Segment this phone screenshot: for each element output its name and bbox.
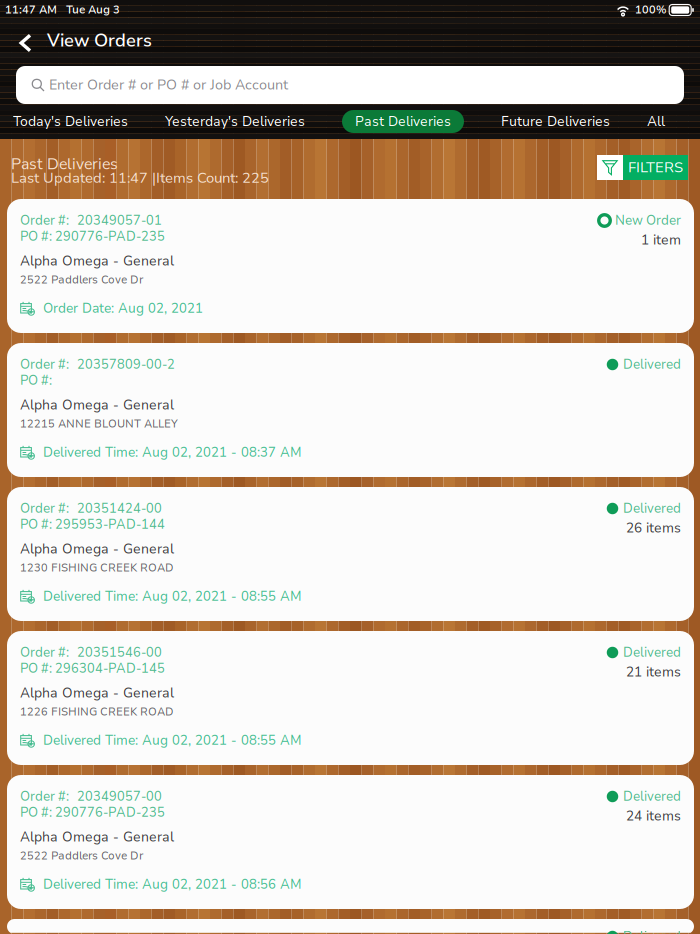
staticText: Past Deliveries: [355, 112, 451, 131]
staticText: Order #:: [20, 212, 69, 229]
staticText: View Orders: [47, 28, 152, 53]
button[interactable]: Order #:: [7, 631, 694, 765]
staticText: Yesterday's Deliveries: [165, 112, 305, 131]
staticText: PO #: 290776-PAD-235: [20, 804, 165, 821]
staticText: Delivered: [623, 788, 681, 805]
staticText: All: [647, 112, 665, 131]
button[interactable]: Back: [6, 20, 44, 58]
staticText: Alpha Omega - General: [20, 684, 174, 702]
staticText: Delivered: [623, 928, 681, 934]
staticText: Alpha Omega - General: [20, 828, 174, 846]
staticText: Alpha Omega - General: [20, 396, 174, 414]
staticText: Order #:: [20, 356, 69, 373]
staticText: 20349057-00: [77, 788, 162, 805]
staticText: PO #: 295953-PAD-144: [20, 516, 165, 533]
staticText: 12215 ANNE BLOUNT ALLEY: [20, 416, 178, 431]
staticText: 20349057-01: [77, 212, 162, 229]
staticText: PO #: 296304-PAD-145: [20, 660, 165, 677]
button[interactable]: Yesterday's Deliveries: [165, 110, 305, 133]
staticText: Enter Order # or PO # or Job Account: [49, 75, 288, 95]
button[interactable]: Enter Order # or PO # or Job Account: [16, 66, 684, 104]
staticText: Order #:: [20, 644, 69, 661]
staticText: Order #:: [20, 500, 69, 517]
staticText: PO #: 290776-PAD-235: [20, 228, 165, 245]
staticText: New Order: [615, 212, 681, 229]
staticText: 11:47 AM: [5, 2, 57, 17]
staticText: 1 item: [641, 231, 681, 249]
button[interactable]: Today's Deliveries: [13, 110, 128, 133]
staticText: Delivered: [623, 644, 681, 661]
staticText: 20351424-00: [77, 500, 162, 517]
button[interactable]: FILTERS: [597, 155, 688, 180]
button[interactable]: Order #:: [7, 343, 694, 477]
staticText: PO #:: [20, 372, 52, 389]
staticText: 1226 FISHING CREEK ROAD: [20, 704, 174, 719]
staticText: Delivered: [623, 356, 681, 373]
staticText: FILTERS: [628, 157, 683, 177]
staticText: Order #:: [20, 788, 69, 805]
staticText: 24 items: [626, 807, 681, 825]
button[interactable]: Order #:: [7, 487, 694, 621]
staticText: 1230 FISHING CREEK ROAD: [20, 560, 174, 575]
staticText: Alpha Omega - General: [20, 540, 174, 558]
staticText: Delivered Time: Aug 02, 2021 - 08:55 AM: [43, 588, 302, 605]
staticText: Today's Deliveries: [13, 112, 128, 131]
staticText: 20357809-00-2: [77, 356, 175, 373]
staticText: Future Deliveries: [501, 112, 610, 131]
staticText: Tue Aug 3: [66, 2, 120, 17]
staticText: 100%: [635, 2, 666, 17]
button[interactable]: Delivered: [7, 919, 694, 934]
staticText: Alpha Omega - General: [20, 252, 174, 270]
staticText: Delivered Time: Aug 02, 2021 - 08:55 AM: [43, 732, 302, 749]
button[interactable]: All: [647, 110, 665, 133]
staticText: Last Updated: 11:47 |Items Count: 225: [11, 168, 269, 188]
button[interactable]: Past Deliveries: [342, 110, 464, 133]
staticText: 20351546-00: [77, 644, 162, 661]
button[interactable]: Order #:: [7, 199, 694, 333]
staticText: 21 items: [626, 663, 681, 681]
staticText: Order Date: Aug 02, 2021: [43, 300, 203, 317]
button[interactable]: Future Deliveries: [501, 110, 610, 133]
staticText: Delivered Time: Aug 02, 2021 - 08:37 AM: [43, 444, 302, 461]
staticText: Delivered: [623, 500, 681, 517]
staticText: 2522 Paddlers Cove Dr: [20, 848, 144, 863]
staticText: 26 items: [626, 519, 681, 537]
button[interactable]: Order #:: [7, 775, 694, 909]
staticText: 2522 Paddlers Cove Dr: [20, 272, 144, 287]
staticText: Delivered Time: Aug 02, 2021 - 08:56 AM: [43, 876, 302, 893]
staticText: Past Deliveries: [11, 153, 118, 175]
